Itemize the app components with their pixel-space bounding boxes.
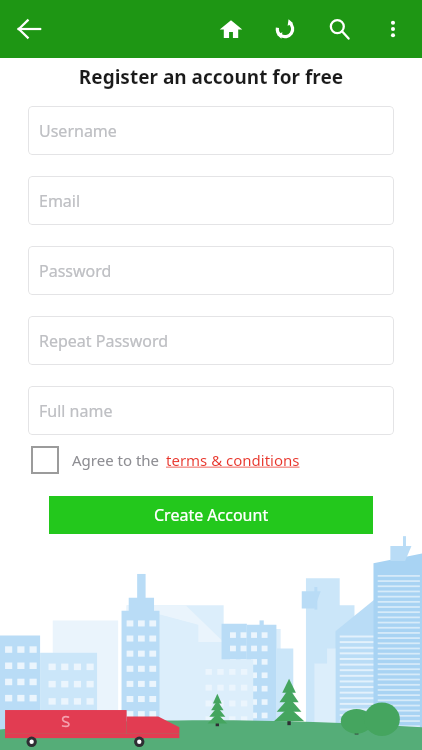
staticText: Username [39, 120, 117, 142]
staticText: Create Account [154, 504, 269, 526]
button[interactable]: Email [28, 176, 394, 225]
button[interactable]: Username [28, 106, 394, 155]
button[interactable]: Create Account [49, 496, 373, 534]
staticText: Repeat Password [39, 330, 169, 352]
button[interactable]: Home [204, 2, 258, 56]
staticText: Email [39, 190, 81, 212]
button[interactable]: Refresh [258, 2, 312, 56]
button[interactable]: Agree to the [31, 446, 300, 474]
button[interactable]: Repeat Password [28, 316, 394, 365]
button[interactable]: terms & conditions [166, 450, 300, 470]
button[interactable]: Full name [28, 386, 394, 435]
button[interactable]: Search [312, 2, 366, 56]
button[interactable]: More options [366, 2, 420, 56]
staticText: Agree to the [72, 450, 160, 470]
button[interactable]: Back [6, 6, 52, 52]
staticText: Register an account for free [0, 64, 422, 90]
button[interactable]: Password [28, 246, 394, 295]
staticText: Password [39, 260, 112, 282]
staticText: Full name [39, 400, 113, 422]
